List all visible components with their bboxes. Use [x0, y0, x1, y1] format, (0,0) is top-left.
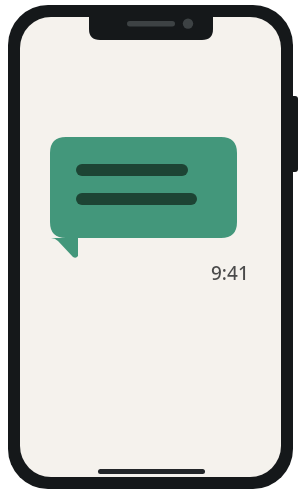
button[interactable]: Phone with message bubble [0, 0, 302, 500]
